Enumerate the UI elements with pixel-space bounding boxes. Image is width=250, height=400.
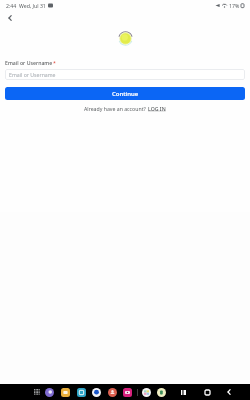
button[interactable]: Continue [5, 87, 245, 100]
button[interactable]: Photos [142, 388, 151, 397]
staticText: Email or Username [5, 59, 53, 66]
staticText: * [53, 59, 56, 66]
staticText: Email or Username [9, 71, 56, 78]
button[interactable]: Assistant [45, 388, 54, 397]
button[interactable]: Messages [92, 388, 101, 397]
staticText: Continue [112, 90, 139, 98]
button[interactable]: Back [224, 387, 234, 397]
staticText: 17% [229, 2, 240, 9]
button[interactable]: All apps [32, 387, 42, 397]
staticText: Already have an account? [84, 105, 148, 112]
staticText: LOG IN [148, 105, 166, 112]
button[interactable]: Calendar [77, 388, 86, 397]
button[interactable]: Files [61, 388, 70, 397]
staticText: 2:44 [6, 2, 17, 9]
button[interactable]: Back [3, 11, 17, 25]
button[interactable]: Email or Username [5, 69, 245, 80]
staticText: Wed, Jul 31 [19, 2, 46, 9]
button[interactable]: LOG IN [148, 105, 166, 112]
button[interactable]: Recent apps [178, 387, 188, 397]
button[interactable]: Contacts [108, 388, 117, 397]
button[interactable]: Play Store [157, 388, 166, 397]
button[interactable]: YouTube [123, 388, 132, 397]
button[interactable]: Home [202, 387, 212, 397]
